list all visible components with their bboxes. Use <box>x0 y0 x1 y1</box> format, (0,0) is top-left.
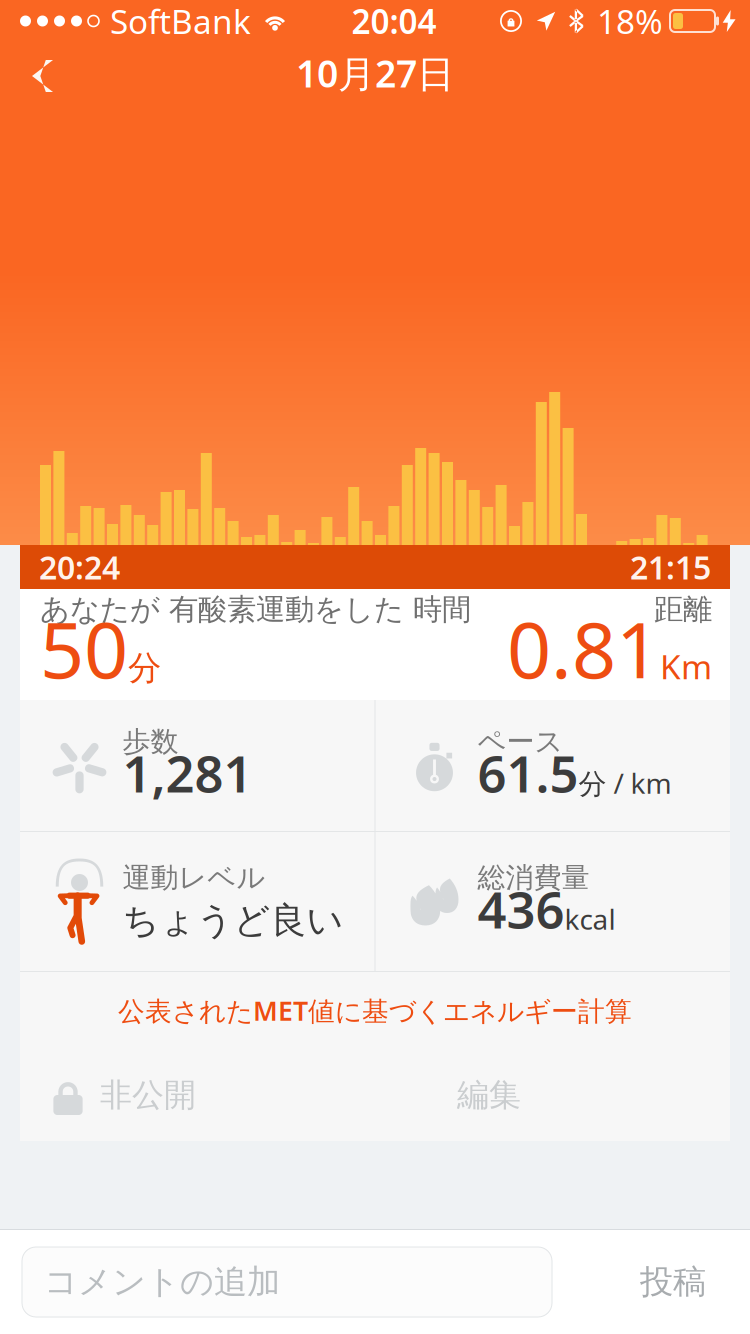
staticText: 10月27日 <box>296 48 454 98</box>
staticText: あなたが 有酸素運動をした 時間 <box>40 591 471 627</box>
staticText: 436 <box>477 875 564 942</box>
staticText: 61.5 <box>477 739 578 806</box>
staticText: 分 / km <box>578 764 671 801</box>
staticText: 21:15 <box>630 546 711 588</box>
button[interactable]: 戻る <box>0 42 77 100</box>
staticText: 公表されたMET値に基づくエネルギー計算 <box>118 993 632 1028</box>
staticText: ペース <box>477 724 563 759</box>
staticText: SoftBank <box>110 0 251 43</box>
button[interactable]: 投稿 <box>608 1247 738 1317</box>
staticText: 距離 <box>654 591 712 627</box>
staticText: 50 <box>40 597 128 699</box>
staticText: kcal <box>564 900 615 937</box>
staticText: 0.81 <box>507 597 660 699</box>
staticText: 分 <box>128 648 161 688</box>
button[interactable]: 公表されたMET値に基づくエネルギー計算 <box>20 972 730 1049</box>
staticText: 18% <box>597 0 663 43</box>
button[interactable]: 非公開 <box>20 1049 212 1141</box>
staticText: 編集 <box>457 1075 521 1115</box>
staticText: 非公開 <box>100 1075 196 1115</box>
staticText: 20:24 <box>39 546 120 588</box>
staticText: 投稿 <box>640 1261 706 1302</box>
staticText: コメントの追加 <box>44 1261 280 1302</box>
staticText: 運動レベル <box>122 860 265 895</box>
button[interactable]: コメントの追加 <box>22 1247 552 1317</box>
staticText: ちょうど良い <box>122 898 343 942</box>
staticText: 20:04 <box>351 0 436 43</box>
staticText: Km <box>660 644 712 688</box>
staticText: 1,281 <box>122 739 252 806</box>
button[interactable]: 編集 <box>424 1049 554 1141</box>
staticText: 総消費量 <box>477 860 589 895</box>
staticText: 歩数 <box>122 724 178 759</box>
